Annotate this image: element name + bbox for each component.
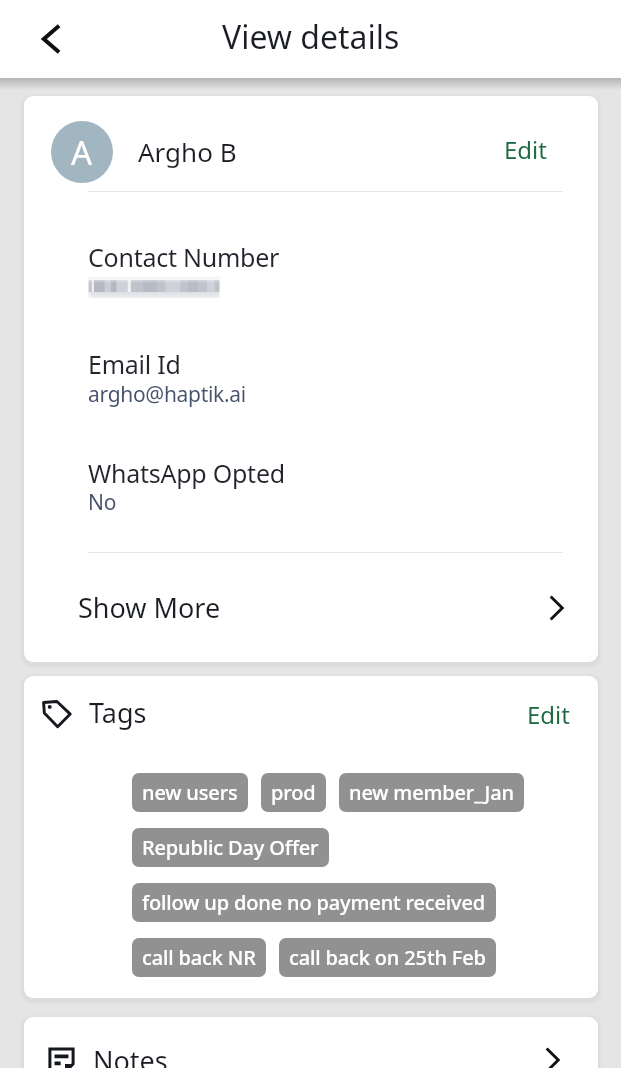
button[interactable]: Back — [22, 10, 80, 68]
staticText: No — [88, 488, 117, 517]
staticText: Notes — [93, 1042, 168, 1068]
staticText: WhatsApp Opted — [88, 456, 285, 490]
other: Tags — [40, 695, 76, 731]
button[interactable]: new users — [132, 773, 248, 812]
staticText: new member_Jan — [349, 779, 514, 806]
staticText: Tags — [89, 694, 147, 731]
button[interactable]: Republic Day Offer — [132, 828, 329, 867]
staticText: Email Id — [88, 347, 181, 381]
button[interactable]: Notes — [24, 1017, 598, 1068]
button[interactable]: Edit — [517, 690, 580, 739]
staticText: follow up done no payment received — [142, 889, 486, 916]
staticText: Republic Day Offer — [142, 834, 319, 861]
staticText: prod — [271, 779, 316, 806]
staticText: A — [71, 130, 93, 175]
staticText: Contact Number — [88, 240, 280, 274]
button[interactable]: Tags — [40, 682, 147, 740]
button[interactable]: Edit — [494, 125, 557, 174]
staticText: call back on 25th Feb — [289, 944, 486, 971]
staticText: argho@haptik.ai — [88, 380, 246, 409]
button[interactable]: Show More — [24, 553, 598, 662]
button[interactable]: call back on 25th Feb — [279, 938, 496, 977]
other: Notes — [47, 1046, 76, 1068]
staticText: Edit — [527, 698, 570, 731]
button[interactable]: new member_Jan — [339, 773, 524, 812]
staticText: View details — [222, 15, 400, 59]
button[interactable]: call back NR — [132, 938, 266, 977]
button[interactable]: prod — [261, 773, 326, 812]
staticText: new users — [142, 779, 238, 806]
staticText: Edit — [504, 133, 547, 166]
staticText: Show More — [78, 589, 221, 626]
staticText: call back NR — [142, 944, 256, 971]
staticText: Argho B — [138, 134, 237, 169]
button[interactable]: follow up done no payment received — [132, 883, 496, 922]
